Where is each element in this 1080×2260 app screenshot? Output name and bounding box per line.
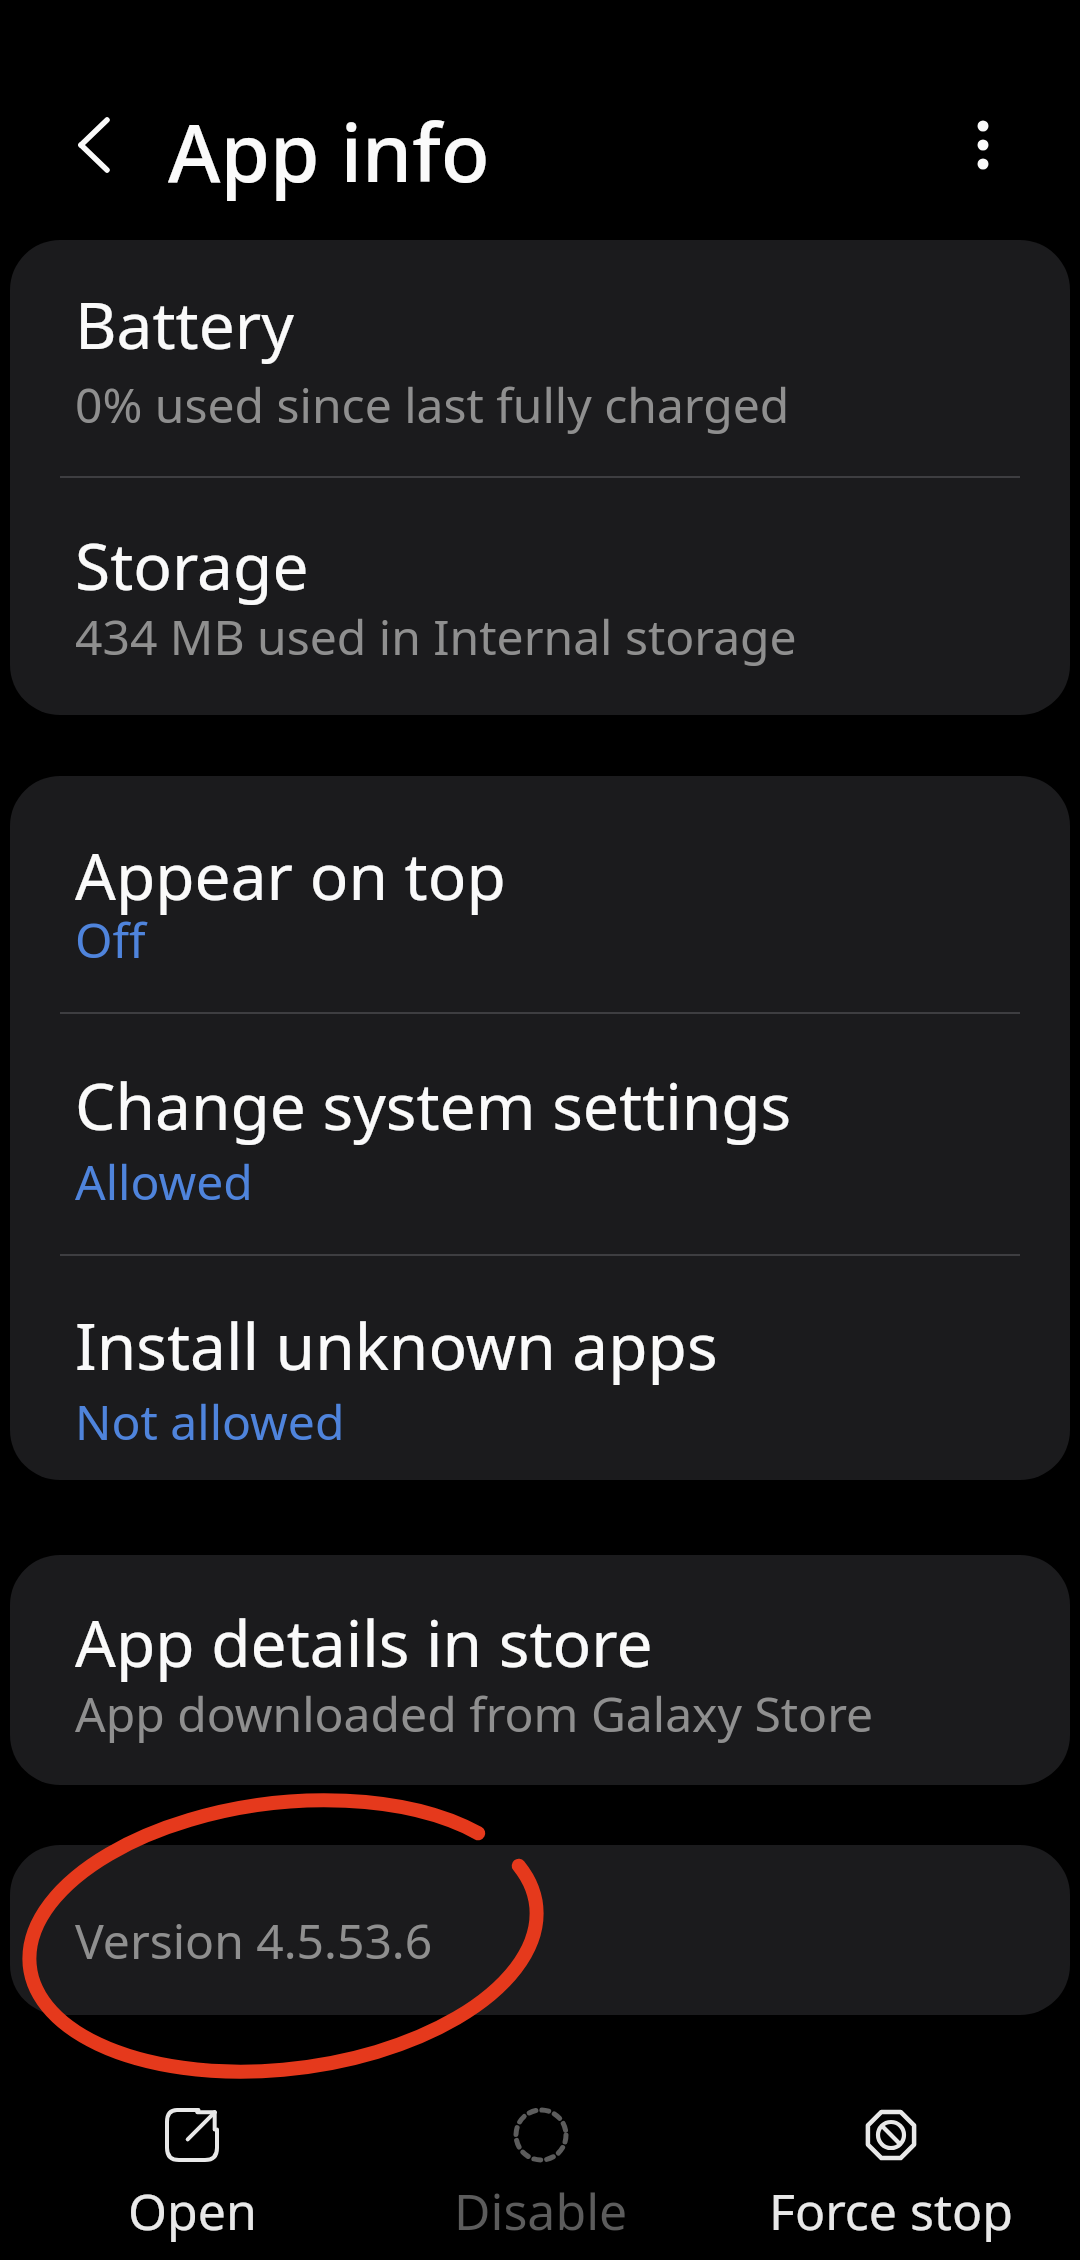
- staticText: Disable: [454, 2177, 628, 2245]
- button[interactable]: Disable: [401, 2086, 681, 2256]
- staticText: 434 MB used in Internal storage: [75, 604, 797, 669]
- staticText: Install unknown apps: [75, 1302, 718, 1389]
- staticText: Not allowed: [75, 1389, 345, 1454]
- staticText: App info: [168, 96, 490, 205]
- staticText: App downloaded from Galaxy Store: [75, 1681, 874, 1746]
- button[interactable]: Change system settings: [10, 1012, 1070, 1254]
- button[interactable]: App details in store: [10, 1555, 1070, 1785]
- button[interactable]: Appear on top: [10, 776, 1070, 1012]
- button[interactable]: Battery: [10, 240, 1070, 476]
- staticText: Force stop: [769, 2177, 1014, 2245]
- button[interactable]: Open: [52, 2086, 332, 2256]
- staticText: Off: [75, 907, 146, 972]
- staticText: App details in store: [75, 1599, 653, 1686]
- staticText: Battery: [75, 281, 294, 368]
- staticText: Storage: [75, 522, 309, 609]
- staticText: 0% used since last fully charged: [75, 372, 790, 437]
- button[interactable]: Force stop: [751, 2086, 1031, 2256]
- button[interactable]: Install unknown apps: [10, 1254, 1070, 1480]
- staticText: Version 4.5.53.6: [75, 1908, 433, 1973]
- staticText: Appear on top: [75, 832, 506, 919]
- staticText: Open: [128, 2177, 257, 2245]
- button[interactable]: Version 4.5.53.6: [10, 1845, 1070, 2015]
- staticText: Change system settings: [75, 1062, 792, 1149]
- button[interactable]: Storage: [10, 478, 1070, 715]
- button[interactable]: [948, 110, 1018, 180]
- button[interactable]: [58, 110, 128, 180]
- staticText: Allowed: [75, 1149, 253, 1214]
